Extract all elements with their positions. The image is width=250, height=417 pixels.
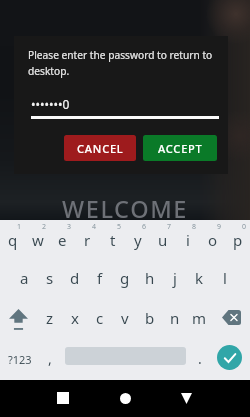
button[interactable]: 2 [25,220,50,260]
button[interactable]: v [112,300,137,340]
staticText: a [20,268,29,288]
button[interactable]: ACCEPT [143,135,217,161]
staticText: i [186,230,190,250]
button[interactable]: l [212,260,237,300]
button[interactable]: s [37,260,62,300]
staticText: WELCOME [62,193,189,225]
staticText: d [70,268,80,288]
staticText: 2 [42,222,47,232]
staticText: ?123 [8,352,32,367]
staticText: u [158,230,168,250]
staticText: p [233,230,243,250]
button[interactable]: 3 [50,220,75,260]
staticText: x [71,308,79,328]
staticText: 6 [142,222,147,232]
staticText: 1 [17,222,22,232]
button[interactable]: Enter [217,345,242,370]
button[interactable]: 4 [75,220,100,260]
staticText: q [8,230,18,250]
staticText: 0 [242,222,247,232]
button[interactable]: 6 [125,220,150,260]
staticText: v [121,308,129,328]
button[interactable]: c [87,300,112,340]
button[interactable]: Back [168,380,204,417]
staticText: CANCEL [77,141,124,156]
button[interactable]: g [112,260,137,300]
staticText: 7 [167,222,172,232]
button[interactable]: 7 [150,220,175,260]
staticText: h [145,268,155,288]
staticText: w [32,230,44,250]
button[interactable]: 1 [0,220,25,260]
staticText: 4 [92,222,97,232]
staticText: . [198,349,202,368]
staticText: s [46,268,54,288]
button[interactable]: 8 [175,220,200,260]
button[interactable]: 0 [225,220,250,260]
staticText: , [48,349,52,368]
staticText: c [96,308,104,328]
staticText: 9 [217,222,222,232]
button[interactable]: j [162,260,187,300]
button[interactable]: h [137,260,162,300]
button[interactable]: x [62,300,87,340]
button[interactable]: f [87,260,112,300]
button[interactable]: d [62,260,87,300]
button[interactable]: Period [188,340,212,380]
staticText: 5 [117,222,122,232]
staticText: e [58,230,67,250]
button[interactable]: b [137,300,162,340]
button[interactable]: 5 [100,220,125,260]
button[interactable]: k [187,260,212,300]
staticText: Please enter the password to return to d… [28,48,218,78]
button[interactable]: m [187,300,212,340]
staticText: ACCEPT [158,141,203,156]
staticText: z [46,308,54,328]
button[interactable]: Shift [0,300,37,340]
staticText: 3 [67,222,72,232]
staticText: n [170,308,180,328]
staticText: l [223,268,227,288]
staticText: j [173,268,177,288]
button[interactable]: a [12,260,37,300]
staticText: f [97,268,103,288]
staticText: k [195,268,204,288]
staticText: t [110,230,116,250]
button[interactable]: Home [107,380,143,417]
staticText: •••••••0 [31,96,70,112]
button[interactable]: z [37,300,62,340]
button[interactable]: CANCEL [64,135,136,161]
button[interactable]: 9 [200,220,225,260]
staticText: o [208,230,218,250]
button[interactable]: n [162,300,187,340]
staticText: r [84,230,91,250]
button[interactable]: Backspace [212,300,250,340]
button[interactable]: Recents [45,380,81,417]
button[interactable]: ?123 [0,340,40,380]
staticText: g [120,268,130,288]
staticText: b [145,308,155,328]
staticText: y [134,230,142,250]
staticText: 8 [192,222,197,232]
button[interactable]: Comma [38,340,61,380]
staticText: m [192,308,207,328]
